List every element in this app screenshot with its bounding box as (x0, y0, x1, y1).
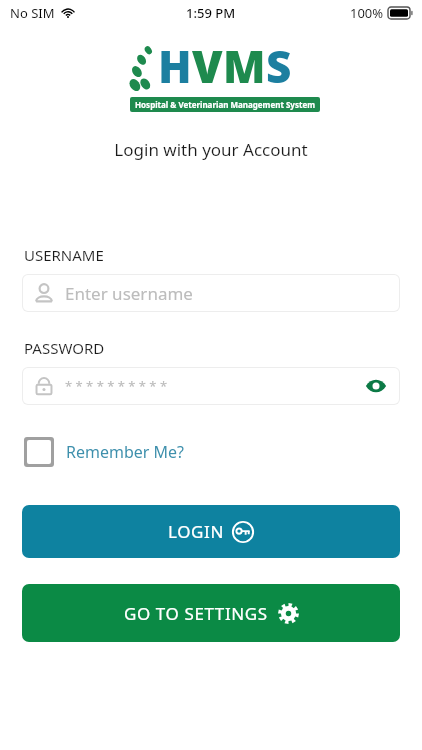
staticText: Remember Me? (66, 441, 185, 463)
staticText: Enter username (65, 282, 193, 305)
staticText: M (223, 36, 266, 96)
button[interactable]: LOGIN (22, 505, 400, 558)
staticText: No SIM (10, 4, 55, 22)
staticText: Hospital & Veterinarian Management Syste… (135, 99, 315, 110)
staticText: PASSWORD (24, 338, 105, 358)
staticText: LOGIN (168, 520, 224, 543)
staticText: GO TO SETTINGS (124, 602, 268, 625)
staticText: 1:59 PM (186, 4, 236, 22)
button[interactable]: GO TO SETTINGS (22, 584, 400, 642)
button[interactable]: * * * * * * * * * * (23, 368, 399, 404)
staticText: USERNAME (24, 245, 104, 265)
staticText: * * * * * * * * * * (65, 377, 363, 395)
button[interactable]: Enter username (23, 275, 399, 311)
staticText: 100% (350, 4, 384, 22)
staticText: Login with your Account (0, 138, 422, 161)
button[interactable]: Remember Me? (22, 433, 187, 471)
staticText: V (192, 36, 223, 96)
staticText: S (266, 36, 292, 96)
button[interactable]: Show password (363, 373, 389, 399)
staticText: H (158, 36, 192, 96)
